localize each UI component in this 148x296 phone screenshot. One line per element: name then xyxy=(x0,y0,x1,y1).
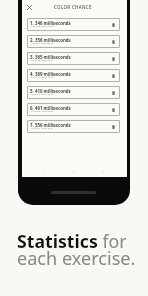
button[interactable]: 4. 369 milliseconds xyxy=(27,69,120,82)
button[interactable]: Delete xyxy=(109,89,117,97)
staticText: Statistics for xyxy=(17,229,127,253)
staticText: 3. 365 milliseconds xyxy=(30,54,71,60)
button[interactable]: 2. 356 milliseconds xyxy=(27,35,120,48)
button[interactable]: 6. 461 milliseconds xyxy=(27,103,120,116)
button[interactable]: Delete xyxy=(109,72,117,80)
staticText: 13:37:44 23.04.2019 xyxy=(31,93,54,96)
staticText: 2. 356 milliseconds xyxy=(30,37,71,43)
staticText: 7. 556 milliseconds xyxy=(30,122,71,128)
button[interactable]: 5. 410 milliseconds xyxy=(27,86,120,99)
button[interactable]: Delete xyxy=(109,123,117,131)
staticText: 13:38:22 23.04.2019 xyxy=(31,110,54,113)
staticText: 4. 369 milliseconds xyxy=(30,71,71,77)
staticText: each exercise. xyxy=(17,246,136,271)
button[interactable]: Delete xyxy=(109,55,117,63)
button[interactable]: 7. 556 milliseconds xyxy=(27,120,120,133)
button[interactable]: 3. 365 milliseconds xyxy=(27,52,120,65)
button[interactable]: Close xyxy=(24,2,35,13)
staticText: 6. 461 milliseconds xyxy=(30,105,71,111)
staticText: 5. 410 milliseconds xyxy=(30,88,71,94)
staticText: 13:37:09 23.04.2019 xyxy=(31,25,54,28)
staticText: 1. 346 milliseconds xyxy=(30,20,71,26)
button[interactable]: Delete xyxy=(109,21,117,29)
staticText: 13:38:07 23.04.2019 xyxy=(31,42,54,45)
staticText: 13:37:31 23.04.2019 xyxy=(31,76,54,79)
staticText: 13:37:58 23.04.2019 xyxy=(31,59,54,62)
button[interactable]: 1. 346 milliseconds xyxy=(27,18,120,31)
button[interactable]: Delete xyxy=(109,106,117,114)
button[interactable]: Delete xyxy=(109,38,117,46)
staticText: 13:37:17 23.04.2019 xyxy=(31,127,54,130)
staticText: COLOR CHANCE xyxy=(54,4,92,10)
